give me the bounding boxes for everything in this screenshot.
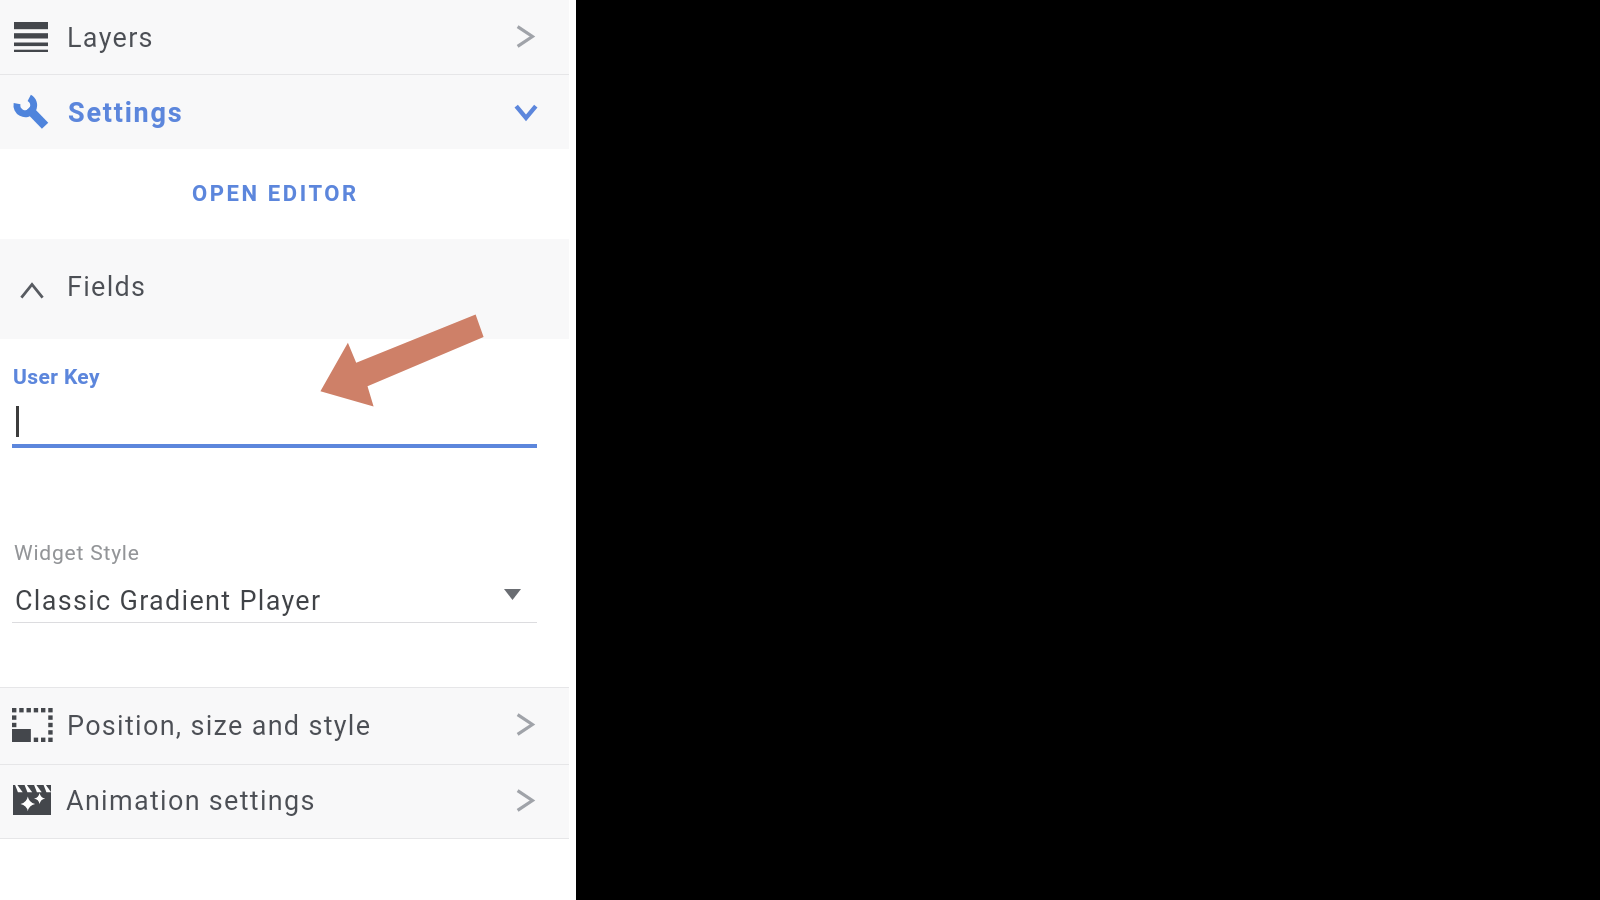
button[interactable]: Position, size and style <box>0 688 569 764</box>
button[interactable]: Collapse Fields <box>0 239 569 339</box>
other: Open Layers <box>516 25 534 48</box>
button[interactable]: Settings <box>0 75 569 149</box>
staticText: Fields <box>67 271 147 303</box>
button[interactable]: Widget Style <box>0 520 569 630</box>
other: Collapse Fields <box>20 283 44 299</box>
staticText: User Key <box>13 365 100 390</box>
staticText: OPEN EDITOR <box>192 181 359 207</box>
staticText: Classic Gradient Player <box>15 585 322 617</box>
staticText: Animation settings <box>66 785 316 817</box>
other: Open position, size and style <box>516 713 534 736</box>
staticText: Position, size and style <box>67 710 372 742</box>
button[interactable]: OPEN EDITOR <box>150 164 400 224</box>
staticText: Layers <box>67 22 154 54</box>
other: Collapse Settings <box>514 104 538 120</box>
other: Open animation settings <box>516 789 534 812</box>
button[interactable]: User Key <box>0 340 569 460</box>
button[interactable]: Animation settings <box>0 765 569 838</box>
button[interactable]: Layers <box>0 0 569 74</box>
staticText: Settings <box>68 97 184 129</box>
staticText: Widget Style <box>14 541 140 566</box>
